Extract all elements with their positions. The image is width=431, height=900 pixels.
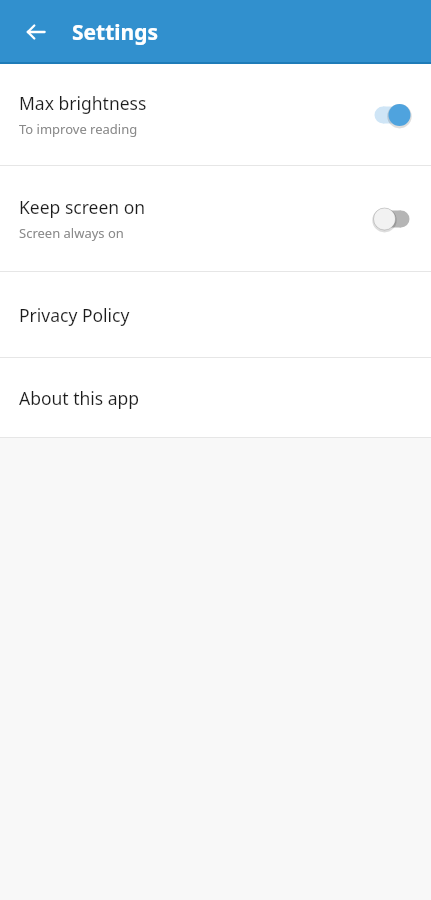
staticText: About this app <box>19 386 140 410</box>
staticText: Settings <box>72 18 159 47</box>
staticText: Screen always on <box>19 224 124 242</box>
button[interactable]: About this app <box>0 358 431 437</box>
button[interactable]: Keep screen on <box>0 166 431 271</box>
button[interactable]: On <box>369 99 415 131</box>
button[interactable]: Off <box>369 203 415 235</box>
button[interactable]: Privacy Policy <box>0 272 431 357</box>
button[interactable]: Back <box>12 8 60 56</box>
staticText: Privacy Policy <box>19 303 130 327</box>
button[interactable]: Max brightness <box>0 64 431 165</box>
staticText: Keep screen on <box>19 195 146 219</box>
staticText: Max brightness <box>19 91 147 115</box>
staticText: To improve reading <box>19 120 138 138</box>
